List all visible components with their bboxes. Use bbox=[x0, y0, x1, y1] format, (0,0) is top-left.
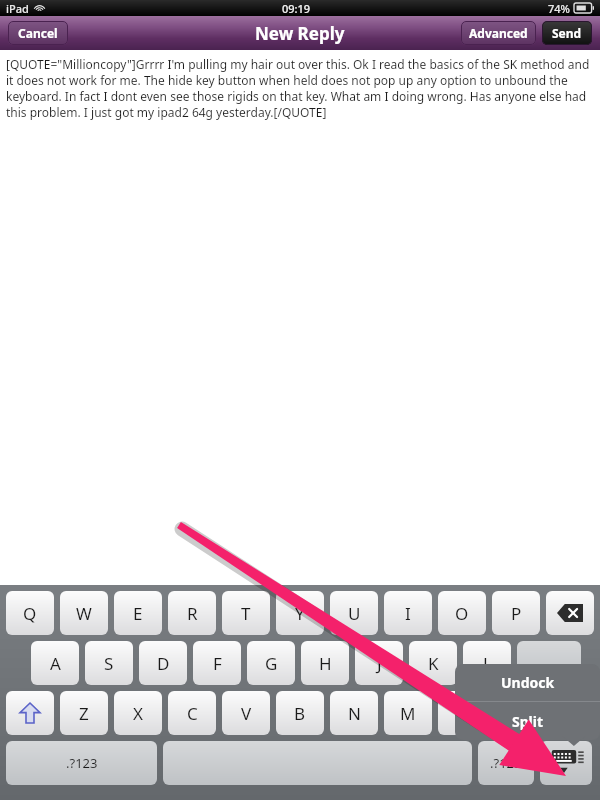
button[interactable] bbox=[163, 741, 472, 785]
button[interactable]: N bbox=[330, 691, 378, 735]
button[interactable]: Y bbox=[276, 591, 324, 635]
staticText: S bbox=[104, 652, 114, 675]
button[interactable]: H bbox=[301, 641, 349, 685]
staticText: Split bbox=[512, 712, 543, 731]
staticText: P bbox=[511, 602, 522, 625]
staticText: X bbox=[133, 702, 143, 725]
staticText: Send bbox=[552, 25, 582, 41]
button[interactable]: S bbox=[85, 641, 133, 685]
staticText: Undock bbox=[501, 673, 555, 692]
button[interactable]: Q bbox=[6, 591, 54, 635]
staticText: .?123 bbox=[490, 754, 522, 772]
button[interactable]: Hide keyboard bbox=[540, 741, 592, 785]
button[interactable]: F bbox=[193, 641, 241, 685]
button[interactable]: W bbox=[60, 591, 108, 635]
staticText: F bbox=[213, 652, 222, 675]
staticText: New Reply bbox=[255, 22, 345, 45]
staticText: D bbox=[157, 652, 170, 675]
button[interactable]: A bbox=[31, 641, 79, 685]
staticText: iPad bbox=[6, 1, 29, 16]
staticText: W bbox=[76, 602, 92, 625]
button[interactable]: T bbox=[222, 591, 270, 635]
staticText: J bbox=[377, 652, 382, 675]
button[interactable] bbox=[546, 591, 594, 635]
button[interactable]: R bbox=[168, 591, 216, 635]
button[interactable]: P bbox=[492, 591, 540, 635]
staticText: Q bbox=[23, 602, 37, 625]
button[interactable]: G bbox=[247, 641, 295, 685]
staticText: Z bbox=[79, 702, 89, 725]
button[interactable]: Z bbox=[60, 691, 108, 735]
staticText: R bbox=[187, 602, 198, 625]
button[interactable]: V bbox=[222, 691, 270, 735]
button[interactable]: M bbox=[384, 691, 432, 735]
staticText: 74% bbox=[548, 1, 570, 16]
staticText: [QUOTE="Millioncopy"]Grrrr I'm pulling m… bbox=[6, 56, 594, 120]
button[interactable]: .?123 bbox=[478, 741, 534, 785]
button[interactable]: Split bbox=[455, 702, 600, 740]
button[interactable] bbox=[438, 691, 486, 735]
staticText: V bbox=[241, 702, 252, 725]
staticText: O bbox=[455, 602, 469, 625]
button[interactable]: U bbox=[330, 591, 378, 635]
button[interactable]: K bbox=[409, 641, 457, 685]
button[interactable]: .?123 bbox=[6, 741, 157, 785]
button[interactable]: I bbox=[384, 591, 432, 635]
staticText: L bbox=[483, 652, 492, 675]
button[interactable]: Advanced bbox=[461, 21, 536, 45]
button[interactable]: Undock bbox=[455, 664, 600, 701]
button[interactable] bbox=[492, 691, 576, 735]
staticText: C bbox=[187, 702, 198, 725]
staticText: U bbox=[348, 602, 361, 625]
button[interactable] bbox=[517, 641, 581, 685]
button[interactable]: D bbox=[139, 641, 187, 685]
button[interactable]: L bbox=[463, 641, 511, 685]
staticText: G bbox=[265, 652, 278, 675]
staticText: E bbox=[133, 602, 143, 625]
button[interactable]: J bbox=[355, 641, 403, 685]
button[interactable]: B bbox=[276, 691, 324, 735]
staticText: T bbox=[241, 602, 251, 625]
staticText: Y bbox=[295, 602, 305, 625]
staticText: N bbox=[348, 702, 361, 725]
button[interactable]: E bbox=[114, 591, 162, 635]
button[interactable] bbox=[6, 691, 54, 735]
button[interactable]: Send bbox=[542, 21, 592, 45]
staticText: M bbox=[400, 702, 416, 725]
button[interactable]: Cancel bbox=[8, 21, 68, 45]
staticText: K bbox=[428, 652, 439, 675]
staticText: 09:19 bbox=[282, 1, 311, 16]
staticText: Cancel bbox=[18, 25, 58, 41]
staticText: Advanced bbox=[469, 25, 528, 41]
button[interactable]: C bbox=[168, 691, 216, 735]
button[interactable]: X bbox=[114, 691, 162, 735]
staticText: B bbox=[294, 702, 306, 725]
staticText: H bbox=[319, 652, 332, 675]
button[interactable]: O bbox=[438, 591, 486, 635]
staticText: A bbox=[50, 652, 61, 675]
staticText: I bbox=[405, 602, 411, 625]
staticText: .?123 bbox=[66, 754, 98, 772]
